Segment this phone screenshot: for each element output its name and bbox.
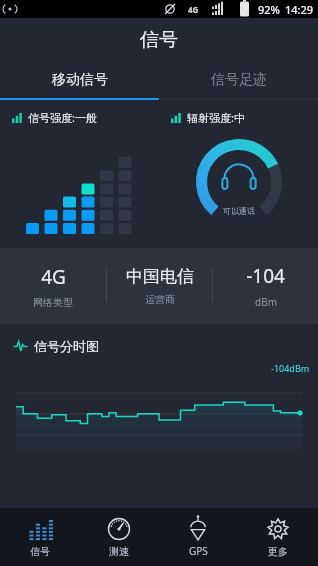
button[interactable]: GPS (158, 508, 238, 566)
button[interactable]: 中国电信 (107, 266, 212, 306)
staticText: 更多 (268, 545, 288, 558)
staticText: GPS (189, 544, 208, 558)
staticText: 4G (41, 264, 66, 290)
staticText: dBm (255, 295, 277, 309)
button[interactable]: 信号 (0, 508, 79, 566)
staticText: 信号 (30, 545, 50, 558)
button[interactable]: 测速 (79, 508, 158, 566)
button[interactable]: 更多 (238, 508, 318, 566)
staticText: 辐射强度:中 (187, 110, 245, 125)
staticText: 移动信号 (52, 71, 108, 89)
staticText: 信号 (140, 28, 178, 52)
button[interactable]: 信号足迹 (159, 62, 318, 98)
staticText: 信号分时图 (34, 338, 99, 354)
staticText: 网络类型 (33, 296, 73, 309)
staticText: -104dBm (271, 362, 310, 374)
staticText: 信号强度:一般 (28, 110, 97, 125)
staticText: 4G (188, 4, 199, 15)
staticText: 中国电信 (126, 266, 194, 287)
button[interactable]: -104 (213, 263, 318, 309)
staticText: 运营商 (145, 293, 175, 306)
button[interactable]: 4G (0, 264, 106, 309)
staticText: 测速 (109, 545, 129, 558)
staticText: 92% (258, 2, 280, 17)
staticText: 可以通话 (223, 206, 255, 216)
staticText: 14:29 (285, 2, 314, 17)
staticText: -104 (246, 263, 285, 289)
staticText: 信号足迹 (211, 71, 267, 89)
button[interactable]: 移动信号 (0, 62, 159, 98)
